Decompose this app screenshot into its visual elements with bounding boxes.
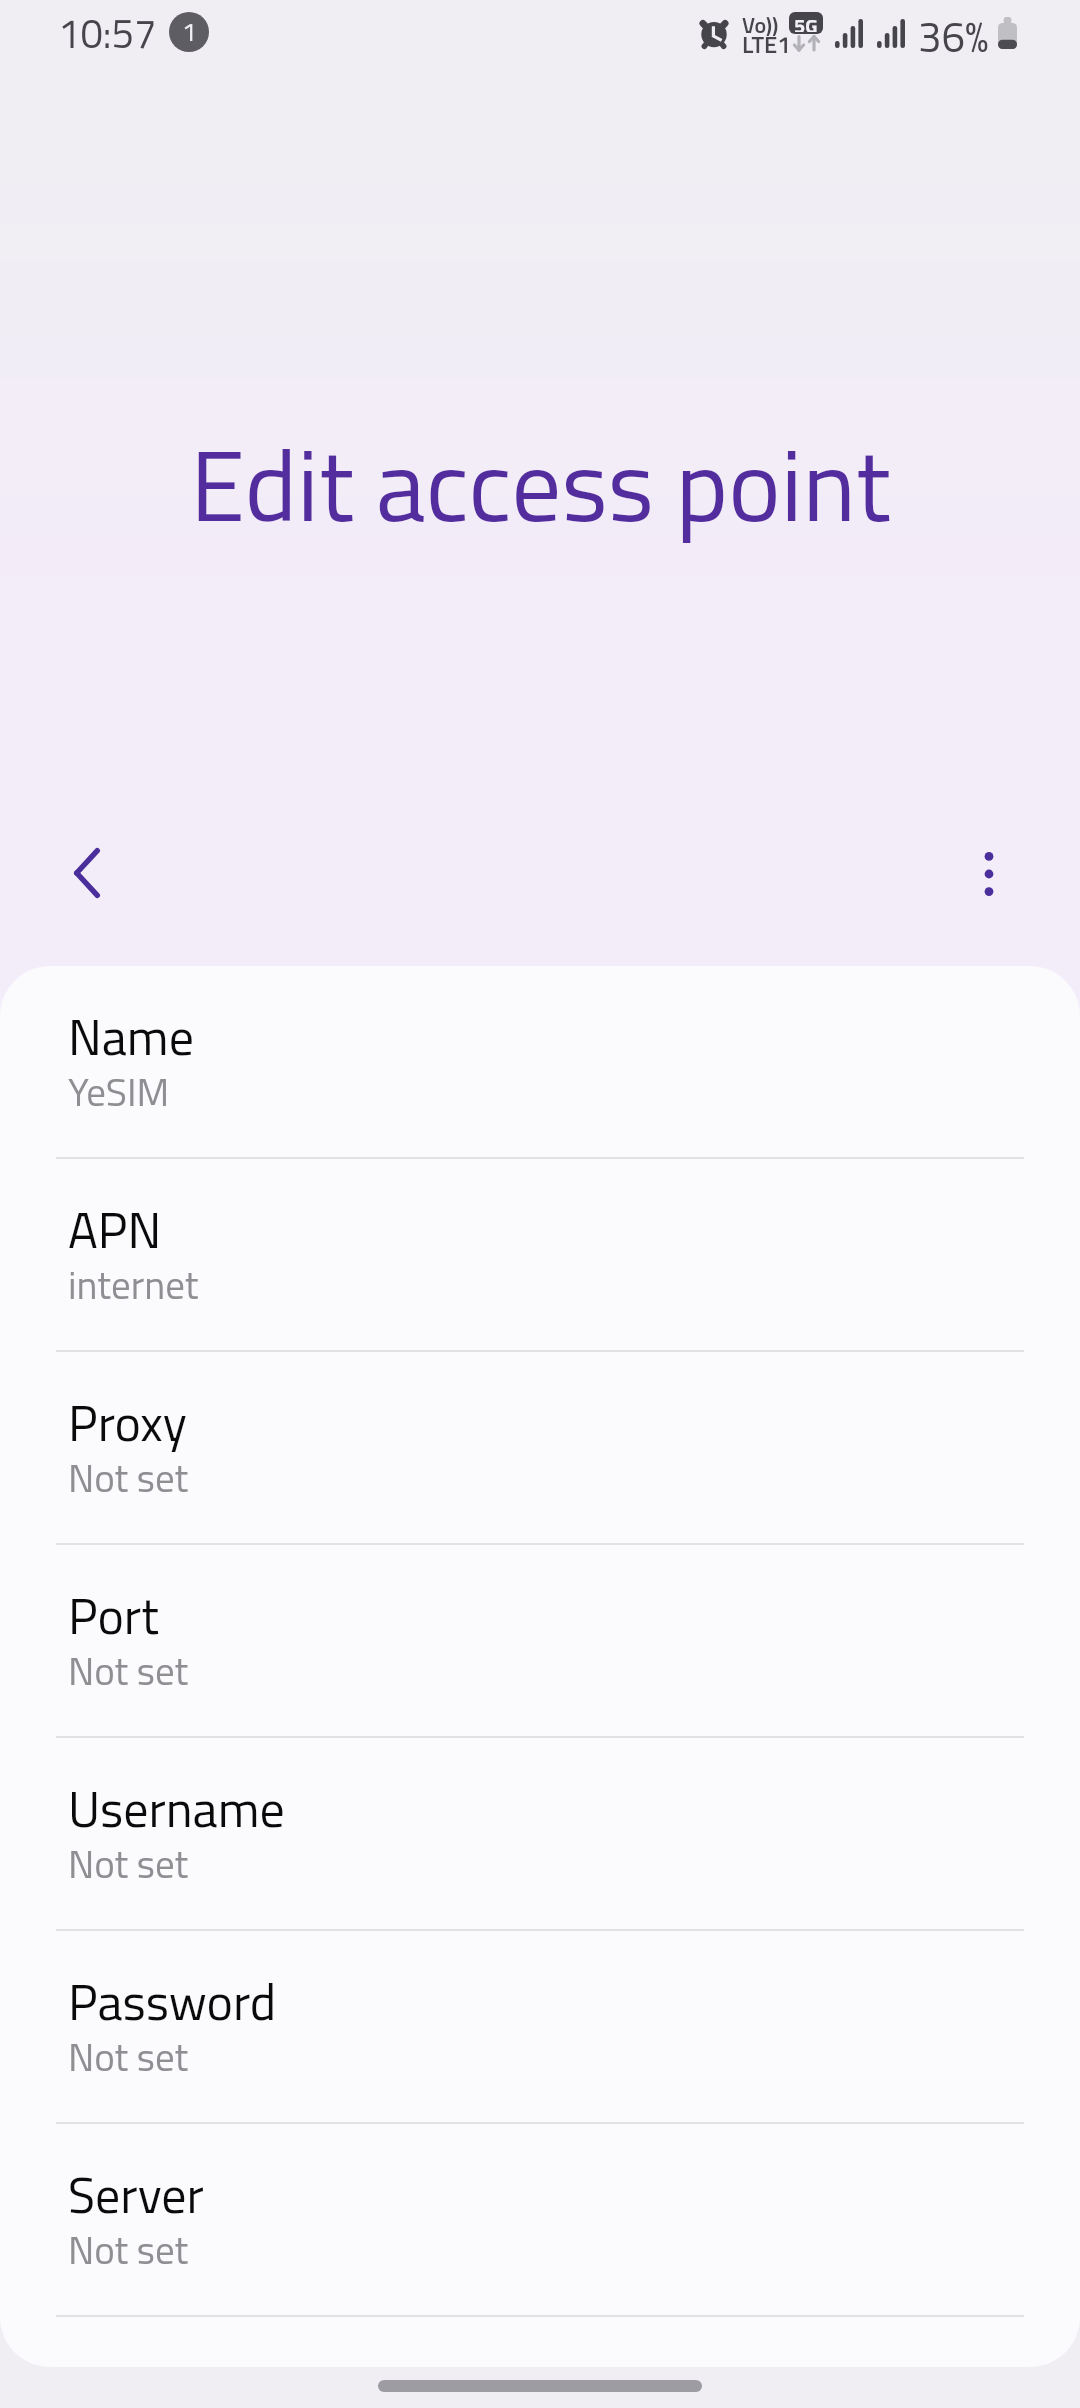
staticText: Not set (68, 1448, 189, 1507)
staticText: 5G (794, 12, 818, 32)
button[interactable]: APN (0, 1159, 1080, 1352)
button[interactable]: More options (933, 818, 1045, 930)
staticText: Not set (68, 2220, 189, 2279)
button[interactable]: Name (0, 966, 1080, 1159)
button[interactable]: Password (0, 1931, 1080, 2124)
staticText: Username (68, 1770, 285, 1846)
staticText: 10:57 (58, 3, 157, 64)
button[interactable]: Port (0, 1545, 1080, 1738)
staticText: YeSIM (68, 1062, 170, 1121)
staticText: Server (68, 2156, 204, 2232)
staticText: LTE1 (742, 26, 791, 63)
staticText: Name (68, 998, 194, 1074)
staticText: 36% (918, 4, 989, 68)
staticText: Not set (68, 2027, 189, 2086)
staticText: Edit access point (190, 408, 891, 559)
staticText: Not set (68, 1834, 189, 1893)
button[interactable]: Proxy (0, 1352, 1080, 1545)
button[interactable]: Username (0, 1738, 1080, 1931)
staticText: Port (68, 1577, 159, 1653)
staticText: Proxy (68, 1384, 187, 1460)
button[interactable]: Navigate up (31, 817, 143, 929)
staticText: Password (68, 1963, 277, 2039)
staticText: 1 (182, 12, 197, 52)
staticText: APN (68, 1191, 162, 1267)
staticText: Not set (68, 1641, 189, 1700)
staticText: internet (68, 1255, 199, 1314)
staticText: Vo)) (742, 8, 779, 41)
button[interactable]: Server (0, 2124, 1080, 2317)
